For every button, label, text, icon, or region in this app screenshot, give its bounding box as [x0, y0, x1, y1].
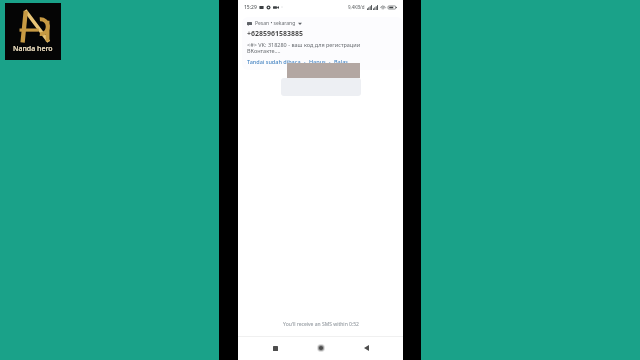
- button[interactable]: Pesan • sekarang: [242, 17, 403, 70]
- staticText: 9,4KB/d: [348, 4, 365, 10]
- button[interactable]: Home: [313, 340, 329, 356]
- button[interactable]: Tandai sudah dibaca: [247, 58, 301, 65]
- staticText: Nanda hero: [13, 44, 53, 54]
- staticText: Hapus: [309, 58, 326, 65]
- staticText: You'll receive an SMS within 0:52: [283, 321, 359, 328]
- staticText: Balas: [334, 58, 349, 65]
- button[interactable]: Recent apps: [267, 340, 283, 356]
- button[interactable]: Balas: [334, 58, 349, 65]
- staticText: Tandai sudah dibaca: [247, 58, 301, 65]
- staticText: <#> VK: 318280 - ваш код для регистрации…: [247, 41, 361, 55]
- button[interactable]: Back: [358, 340, 374, 356]
- staticText: -: [301, 58, 309, 65]
- staticText: +6285961583885: [247, 29, 304, 39]
- button[interactable]: Hapus: [309, 58, 326, 65]
- staticText: -: [326, 58, 334, 65]
- staticText: 15:29: [244, 4, 257, 11]
- staticText: Pesan • sekarang: [255, 20, 296, 27]
